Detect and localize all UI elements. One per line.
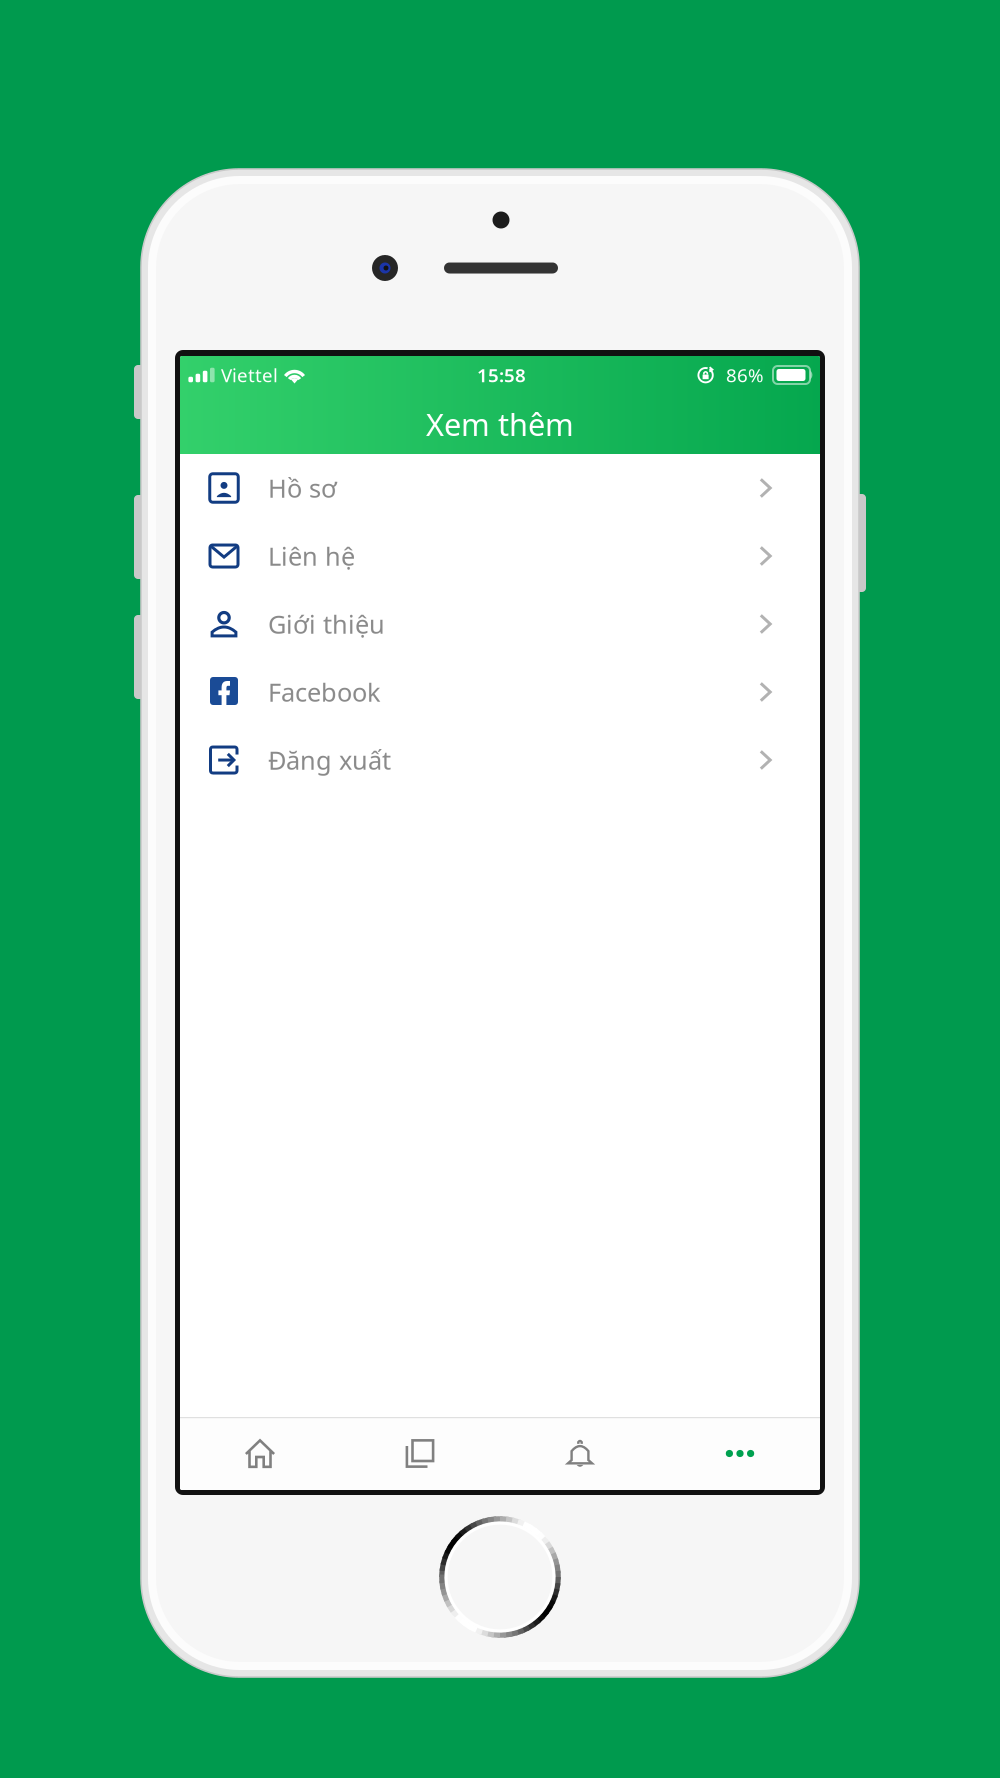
staticText: Đăng xuất (268, 743, 391, 777)
button[interactable]: Xem thêm (660, 1417, 820, 1490)
button[interactable]: Thông báo (500, 1417, 660, 1490)
button[interactable]: Facebook (180, 658, 820, 726)
button[interactable]: Liên hệ (180, 522, 820, 590)
staticText: Xem thêm (426, 404, 574, 444)
staticText: Liên hệ (268, 539, 355, 573)
button[interactable]: Trang chủ (180, 1417, 340, 1490)
staticText: Facebook (268, 675, 381, 709)
button[interactable]: Trang (340, 1417, 500, 1490)
staticText: 86% (726, 363, 764, 387)
button[interactable]: Hồ sơ (180, 454, 820, 522)
staticText: Hồ sơ (268, 471, 337, 505)
staticText: 15:58 (477, 363, 526, 387)
staticText: Viettel (221, 363, 278, 387)
button[interactable]: Đăng xuất (180, 726, 820, 794)
staticText: Giới thiệu (268, 607, 385, 641)
button[interactable]: Giới thiệu (180, 590, 820, 658)
